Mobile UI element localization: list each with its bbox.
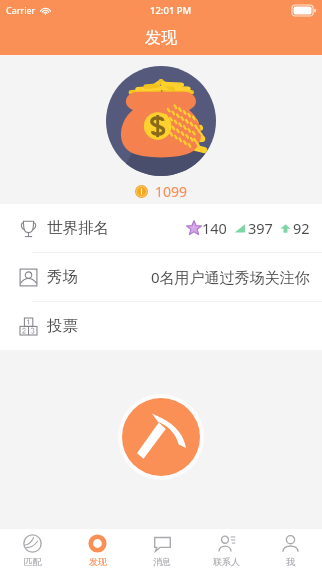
button[interactable]: Mine bbox=[122, 398, 200, 476]
button[interactable]: 联系人 bbox=[194, 529, 258, 572]
staticText: 世界排名 bbox=[47, 218, 109, 238]
staticText: 1099 bbox=[155, 182, 188, 201]
staticText: 发现 bbox=[89, 556, 107, 567]
button[interactable]: 世界排名 bbox=[0, 204, 322, 252]
button[interactable]: 投票 bbox=[0, 302, 322, 350]
button[interactable]: 秀场 bbox=[0, 253, 322, 301]
staticText: 匹配 bbox=[24, 556, 42, 567]
staticText: 消息 bbox=[153, 556, 171, 567]
staticText: 投票 bbox=[47, 316, 78, 336]
staticText: Carrier bbox=[6, 4, 36, 16]
staticText: 0名用户通过秀场关注你 bbox=[151, 267, 310, 287]
staticText: 我 bbox=[286, 556, 295, 567]
staticText: 发现 bbox=[145, 28, 177, 48]
staticText: 397 bbox=[248, 218, 273, 238]
button[interactable]: 匹配 bbox=[0, 529, 65, 572]
button[interactable]: 发现 bbox=[65, 529, 130, 572]
staticText: 140 bbox=[202, 218, 227, 238]
staticText: 联系人 bbox=[213, 556, 240, 567]
staticText: 秀场 bbox=[47, 267, 78, 287]
staticText: 12:01 PM bbox=[150, 4, 192, 17]
button[interactable]: 我 bbox=[258, 529, 322, 572]
staticText: 92 bbox=[293, 218, 310, 238]
button[interactable]: 消息 bbox=[130, 529, 194, 572]
